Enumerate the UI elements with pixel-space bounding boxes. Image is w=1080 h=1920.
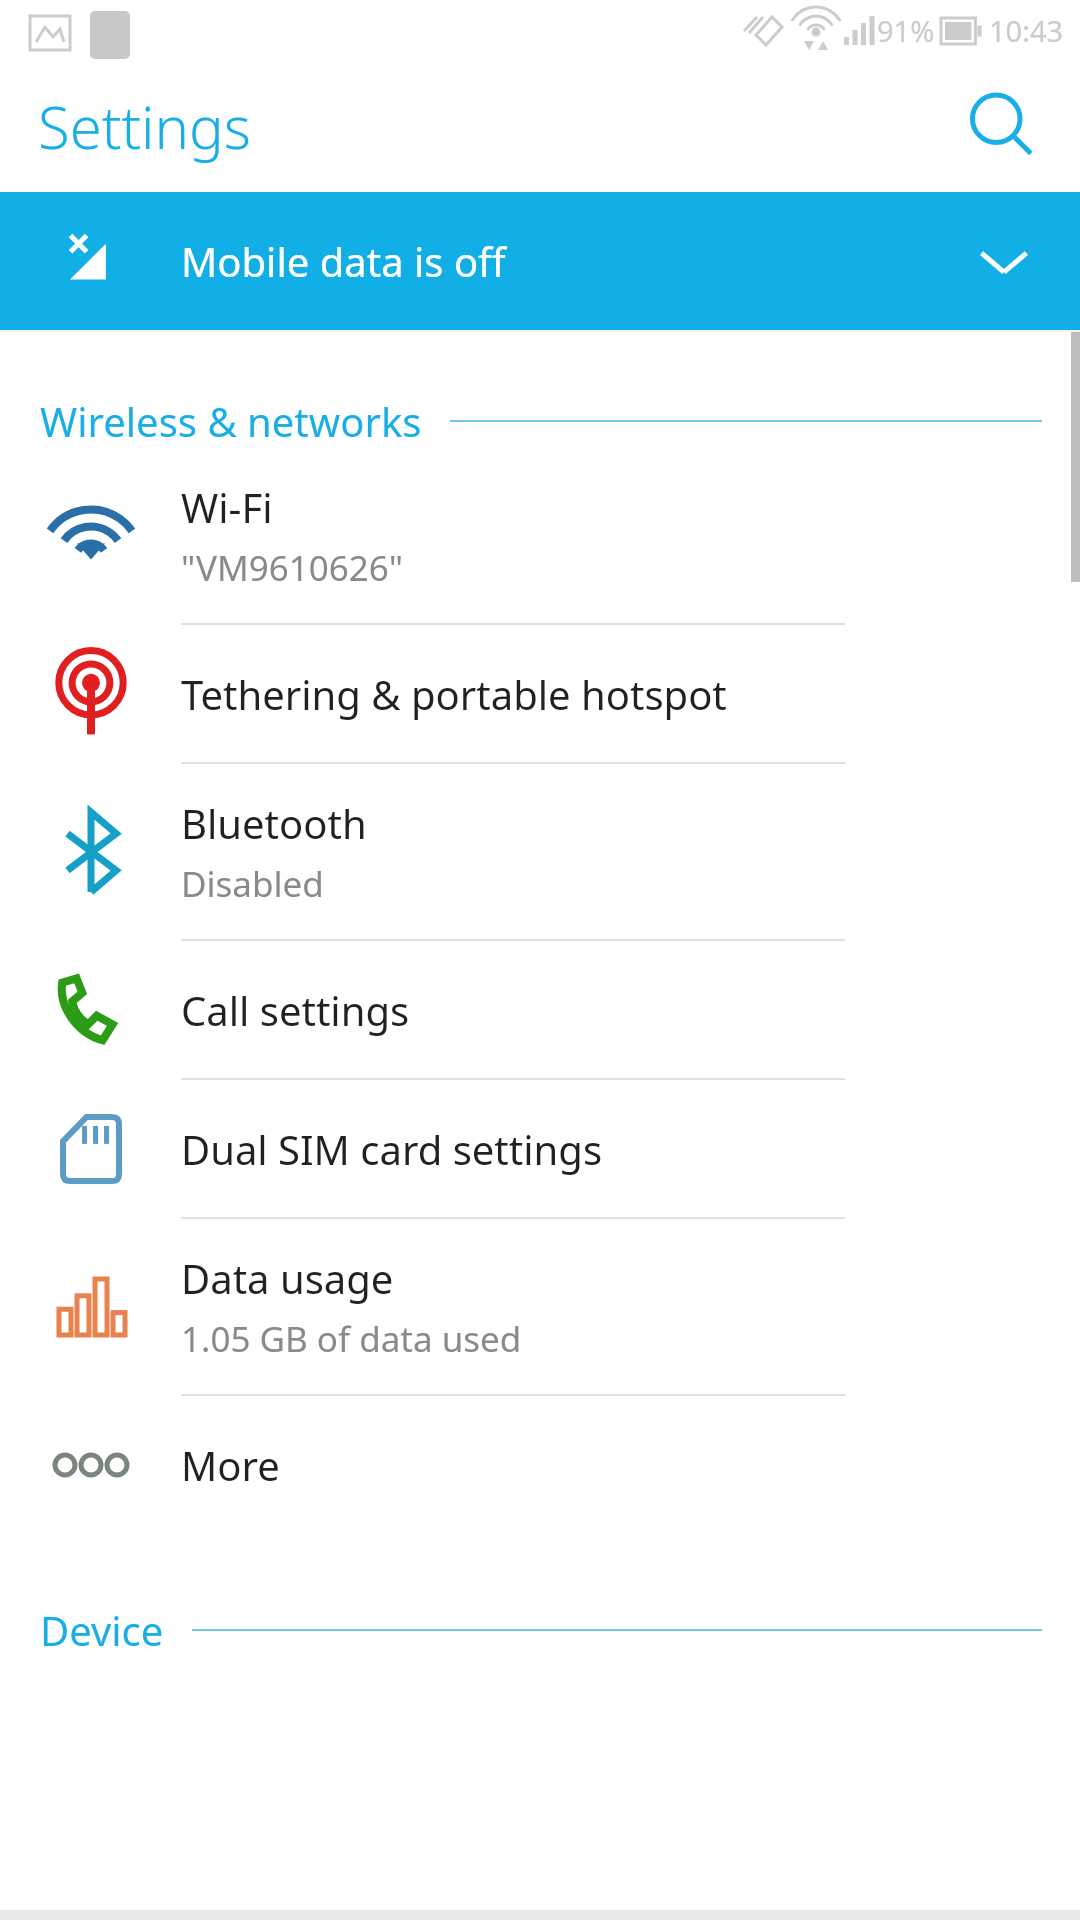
- staticText: Call settings: [181, 983, 410, 1037]
- staticText: Data usage: [181, 1251, 394, 1305]
- staticText: More: [181, 1438, 280, 1492]
- button[interactable]: Search: [954, 78, 1050, 174]
- staticText: Bluetooth: [181, 796, 367, 850]
- button[interactable]: Wi-Fi: [0, 448, 1080, 625]
- button[interactable]: Tethering & portable hotspot: [0, 625, 1080, 764]
- staticText: Tethering & portable hotspot: [181, 667, 727, 721]
- staticText: Mobile data is off: [181, 234, 506, 288]
- staticText: Wireless & networks: [40, 394, 422, 448]
- button[interactable]: Dual SIM card settings: [0, 1080, 1080, 1219]
- staticText: "VM9610626": [181, 544, 404, 592]
- staticText: 10:43: [989, 11, 1064, 50]
- button[interactable]: More: [0, 1396, 1080, 1533]
- staticText: Device: [40, 1603, 164, 1657]
- button[interactable]: Call settings: [0, 941, 1080, 1080]
- staticText: Wi-Fi: [181, 480, 273, 534]
- staticText: 1.05 GB of data used: [181, 1315, 522, 1363]
- staticText: Settings: [38, 87, 251, 166]
- staticText: Disabled: [181, 860, 324, 908]
- button[interactable]: Bluetooth: [0, 764, 1080, 941]
- button[interactable]: Mobile data is off: [0, 192, 1080, 330]
- staticText: 91%: [877, 11, 935, 50]
- button[interactable]: Data usage: [0, 1219, 1080, 1396]
- staticText: Dual SIM card settings: [181, 1122, 603, 1176]
